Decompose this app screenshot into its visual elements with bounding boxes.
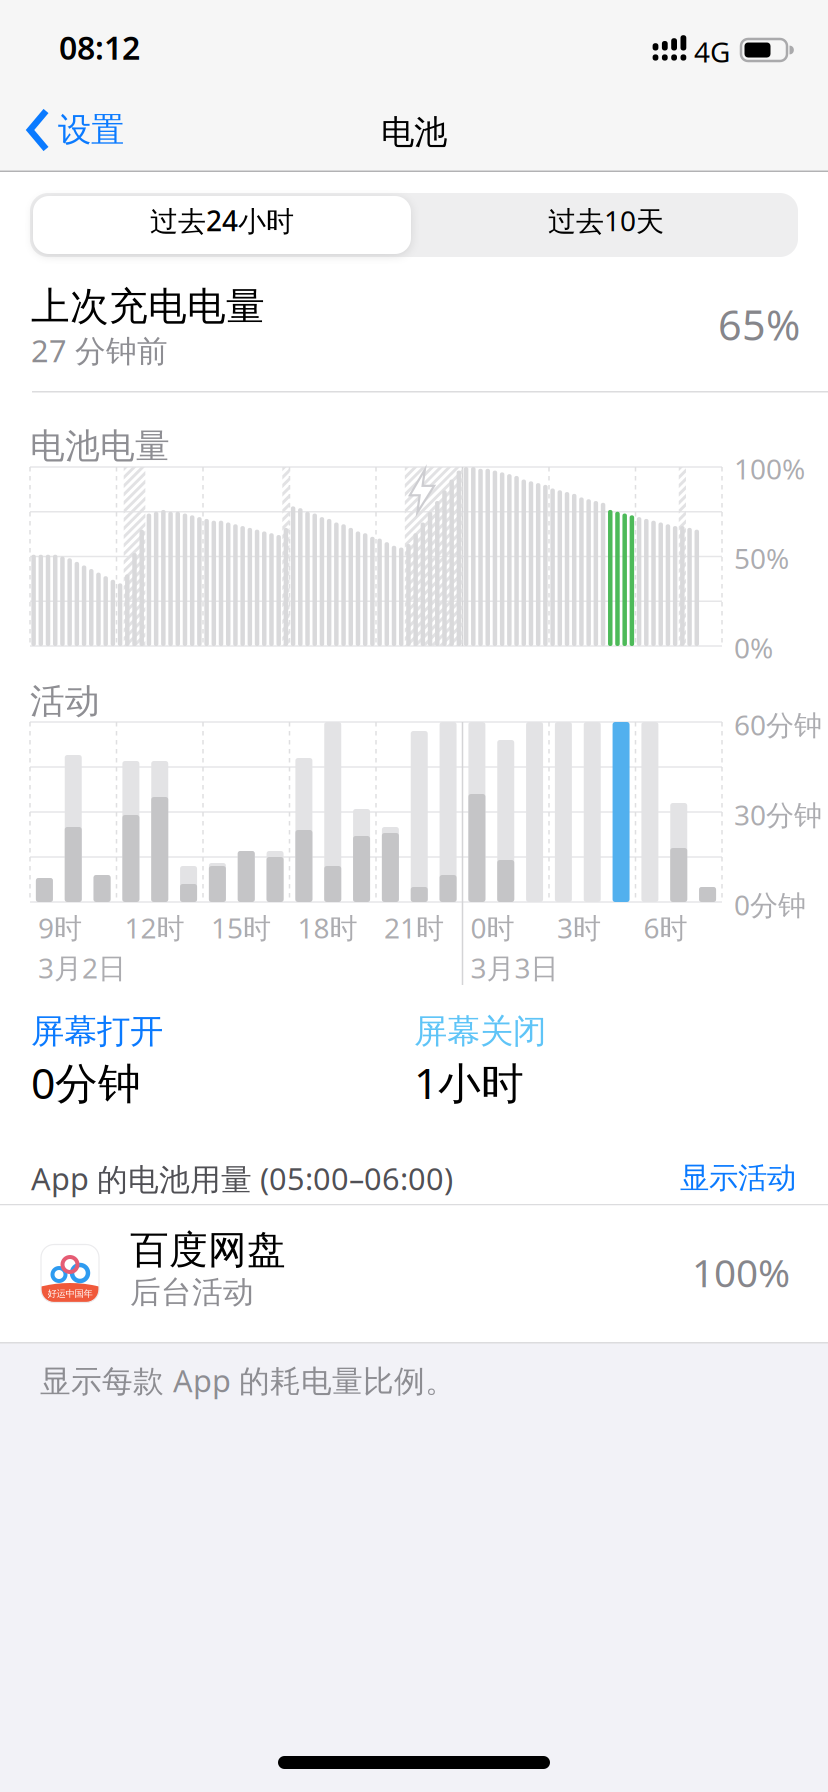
staticText: 50% (734, 539, 789, 577)
button[interactable]: 好运中国年 (0, 1205, 828, 1341)
staticText: 百度网盘 (130, 1226, 286, 1274)
staticText: 3时 (557, 909, 601, 946)
staticText: 100% (692, 1246, 790, 1298)
staticText: 0分钟 (734, 886, 806, 923)
staticText: 后台活动 (130, 1273, 254, 1311)
button[interactable]: 过去24小时 (33, 196, 411, 254)
staticText: 15时 (211, 909, 271, 946)
staticText: 27 分钟前 (31, 330, 168, 371)
staticText: 08:12 (59, 26, 140, 68)
staticText: 过去24小时 (150, 202, 294, 239)
staticText: 过去10天 (548, 202, 664, 239)
staticText: 3月3日 (470, 949, 558, 986)
staticText: 0分钟 (31, 1054, 141, 1111)
staticText: 30分钟 (734, 796, 822, 833)
staticText: 屏幕关闭 (414, 1011, 546, 1052)
staticText: 6时 (643, 909, 687, 946)
staticText: 1小时 (414, 1054, 524, 1111)
staticText: 100% (734, 450, 805, 487)
staticText: 0% (734, 629, 773, 666)
button[interactable]: 显示活动 (680, 1160, 796, 1196)
button[interactable]: 过去10天 (417, 196, 795, 254)
staticText: App 的电池用量 (05:00–06:00) (31, 1158, 453, 1199)
staticText: 9时 (38, 909, 82, 946)
staticText: 12时 (124, 909, 184, 946)
staticText: 0时 (470, 909, 514, 946)
staticText: 上次充电电量 (31, 283, 265, 330)
staticText: 3月2日 (38, 949, 126, 986)
staticText: 屏幕打开 (31, 1011, 163, 1052)
staticText: 65% (718, 297, 800, 352)
staticText: 设置 (58, 109, 124, 150)
staticText: 18时 (297, 909, 357, 946)
staticText: 显示每款 App 的耗电量比例。 (40, 1360, 456, 1401)
staticText: 21时 (384, 909, 444, 946)
staticText: 好运中国年 (47, 1288, 92, 1299)
staticText: 4G (694, 33, 730, 70)
staticText: 60分钟 (734, 706, 822, 743)
staticText: 活动 (30, 680, 100, 723)
staticText: 电池 (381, 112, 447, 153)
button[interactable]: 返回设置 (27, 109, 124, 151)
staticText: 电池电量 (30, 425, 170, 468)
staticText: 显示活动 (680, 1160, 796, 1196)
